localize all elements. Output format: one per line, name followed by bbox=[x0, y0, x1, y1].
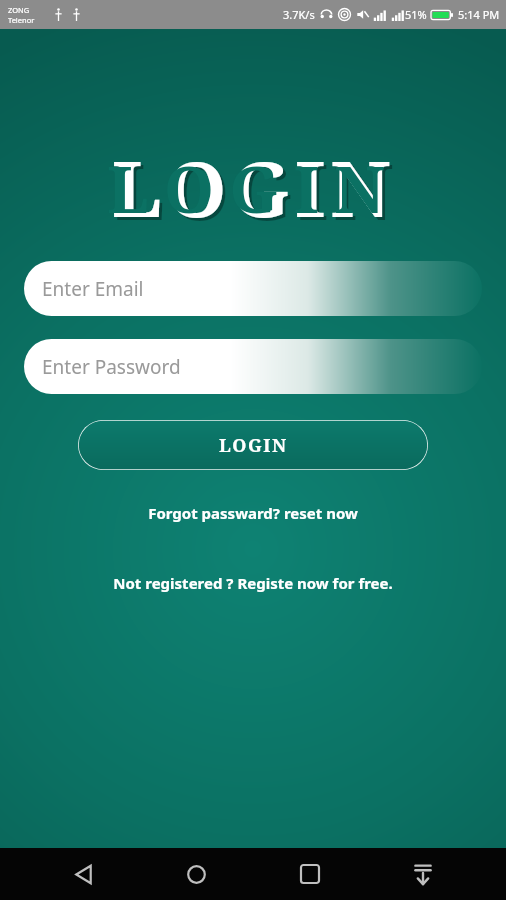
staticText: ZONG bbox=[8, 5, 30, 15]
staticText: 5:14 PM bbox=[458, 7, 500, 22]
button[interactable]: Back bbox=[53, 848, 113, 900]
staticText: LOGIN bbox=[115, 139, 399, 243]
button[interactable]: Enter Email bbox=[24, 261, 482, 316]
staticText: LOGIN bbox=[112, 136, 396, 240]
staticText: 51% bbox=[405, 7, 427, 22]
button[interactable]: Not registered ? Registe now for free. bbox=[101, 569, 405, 597]
button[interactable]: LOGIN bbox=[78, 420, 428, 470]
staticText: LOGIN bbox=[107, 145, 400, 232]
staticText: Telenor bbox=[8, 15, 35, 25]
staticText: LOGIN bbox=[219, 433, 288, 458]
button[interactable]: Forgot passward? reset now bbox=[136, 499, 370, 527]
staticText: Enter Email bbox=[42, 276, 144, 302]
staticText: Not registered ? Registe now for free. bbox=[113, 573, 393, 593]
staticText: Enter Password bbox=[42, 354, 181, 380]
staticText: 3.7K/s bbox=[283, 7, 315, 22]
button[interactable]: Hide keyboard bbox=[393, 848, 453, 900]
button[interactable]: Home bbox=[166, 848, 226, 900]
staticText: Forgot passward? reset now bbox=[148, 503, 358, 523]
button[interactable]: Enter Password bbox=[24, 339, 482, 394]
button[interactable]: Recent apps bbox=[280, 848, 340, 900]
